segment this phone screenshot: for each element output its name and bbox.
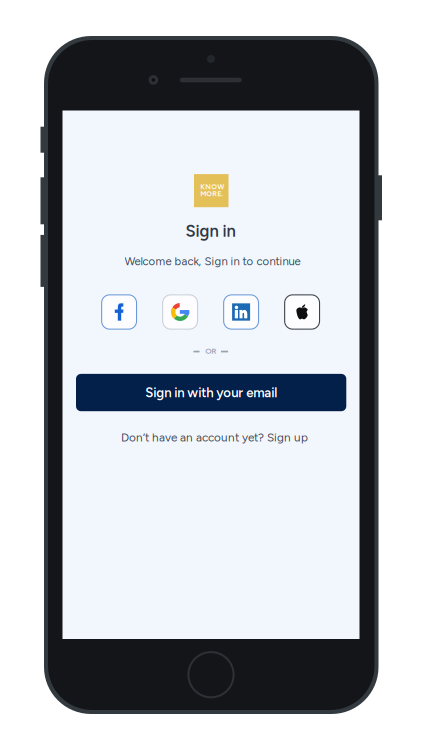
button[interactable]: Sign in with your email: [76, 374, 346, 411]
staticText: OR: [205, 346, 216, 356]
staticText: MORE.: [200, 189, 223, 198]
staticText: Sign in: [185, 221, 235, 241]
button[interactable]: Sign in with Facebook: [101, 294, 137, 330]
staticText: Don’t have an account yet? Sign up: [121, 430, 308, 444]
staticText: Welcome back, Sign in to continue: [124, 254, 300, 268]
staticText: Sign in with your email: [145, 385, 277, 400]
staticText: KNOW: [200, 182, 224, 191]
button[interactable]: Sign in with Google: [162, 294, 198, 330]
button[interactable]: Sign in with LinkedIn: [223, 294, 259, 330]
button[interactable]: Sign in with Apple: [284, 294, 320, 330]
button[interactable]: Don’t have an account yet? Sign up: [121, 430, 308, 444]
